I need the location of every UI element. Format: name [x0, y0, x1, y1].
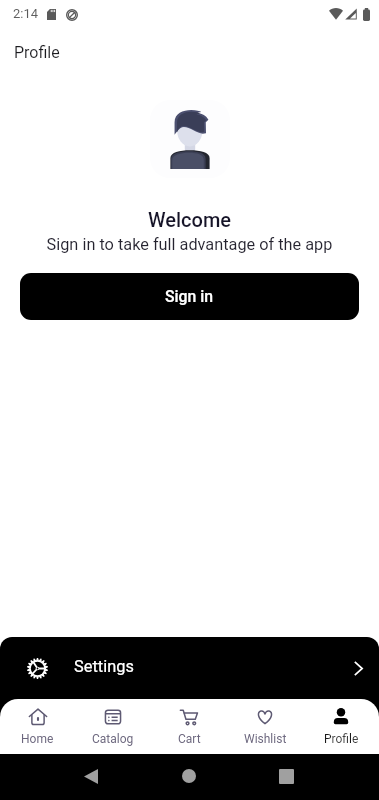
staticText: Welcome: [0, 208, 379, 231]
staticText: 2:14: [13, 6, 39, 21]
other: Recents: [279, 769, 294, 784]
staticText: Profile: [14, 43, 60, 62]
staticText: Catalog: [92, 732, 134, 746]
other: Back: [84, 769, 98, 784]
other: Home: [182, 769, 196, 783]
staticText: Home: [21, 732, 54, 746]
staticText: Profile: [324, 732, 359, 746]
button[interactable]: Profile: [303, 699, 379, 754]
staticText: Cart: [178, 732, 201, 746]
staticText: Sign in to take full advantage of the ap…: [0, 235, 379, 254]
staticText: Wishlist: [244, 732, 287, 746]
button[interactable]: Sign in: [20, 273, 359, 320]
button[interactable]: Cart: [151, 699, 227, 754]
button[interactable]: Wishlist: [227, 699, 303, 754]
button[interactable]: Home: [0, 699, 75, 754]
button[interactable]: Settings: [0, 637, 379, 754]
button[interactable]: Catalog: [75, 699, 151, 754]
staticText: Sign in: [165, 287, 214, 306]
staticText: Settings: [74, 657, 134, 676]
